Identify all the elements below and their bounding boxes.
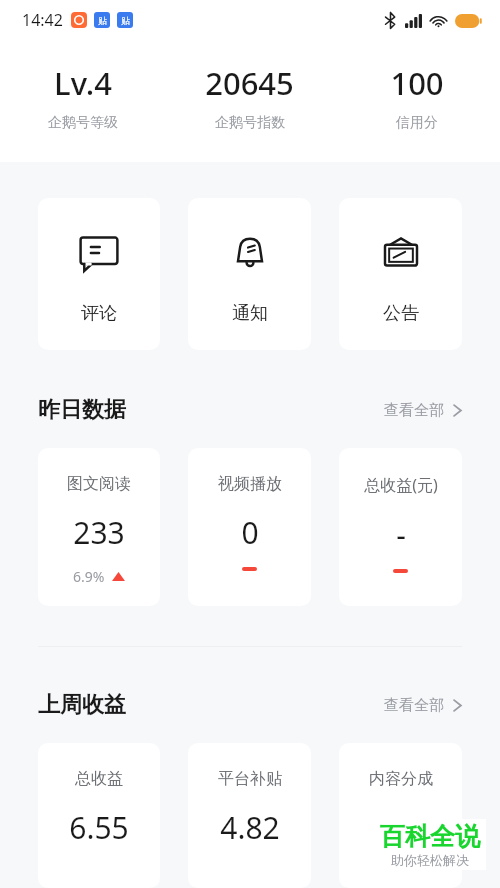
- staticText: 总收益: [75, 769, 123, 789]
- button[interactable]: 视频播放: [188, 448, 311, 606]
- staticText: Lv.4: [54, 62, 112, 104]
- button[interactable]: 查看全部: [384, 696, 462, 715]
- staticText: 6.9%: [73, 567, 105, 586]
- staticText: 平台补贴: [218, 769, 282, 789]
- button[interactable]: 内容分成: [339, 743, 462, 888]
- button[interactable]: Lv.4: [0, 62, 166, 132]
- staticText: 6.55: [69, 807, 129, 848]
- staticText: 企鹅号等级: [48, 114, 118, 132]
- staticText: 视频播放: [218, 474, 282, 494]
- button[interactable]: 总收益(元): [339, 448, 462, 606]
- staticText: 助你轻松解决: [391, 852, 469, 868]
- staticText: 查看全部: [384, 401, 444, 420]
- button[interactable]: 公告: [339, 198, 462, 350]
- staticText: 查看全部: [384, 696, 444, 715]
- staticText: 总收益(元): [364, 474, 438, 496]
- staticText: 公告: [383, 302, 419, 325]
- staticText: 昨日数据: [38, 396, 126, 424]
- staticText: 贴: [121, 15, 130, 26]
- staticText: 20645: [205, 62, 294, 104]
- staticText: 贴: [98, 15, 107, 26]
- button[interactable]: 平台补贴: [188, 743, 311, 888]
- button[interactable]: 总收益: [38, 743, 160, 888]
- staticText: 百科全说: [380, 821, 480, 852]
- button[interactable]: 通知: [188, 198, 311, 350]
- staticText: 图文阅读: [67, 474, 131, 494]
- staticText: 评论: [81, 302, 117, 325]
- other: 查看全部: [453, 698, 462, 713]
- button[interactable]: 100: [333, 62, 500, 132]
- staticText: 4.82: [220, 807, 280, 848]
- staticText: 通知: [232, 302, 268, 325]
- staticText: 信用分: [396, 114, 438, 132]
- button[interactable]: 评论: [38, 198, 160, 350]
- staticText: 14:42: [22, 9, 63, 31]
- staticText: 企鹅号指数: [215, 114, 285, 132]
- staticText: 0: [241, 512, 259, 553]
- staticText: 内容分成: [369, 769, 433, 789]
- staticText: 上周收益: [38, 691, 126, 719]
- button[interactable]: 图文阅读: [38, 448, 160, 606]
- staticText: 100: [390, 62, 444, 104]
- button[interactable]: 查看全部: [384, 401, 462, 420]
- button[interactable]: 20645: [166, 62, 333, 132]
- staticText: -: [396, 514, 406, 555]
- other: 查看全部: [453, 403, 462, 418]
- staticText: 233: [73, 512, 125, 553]
